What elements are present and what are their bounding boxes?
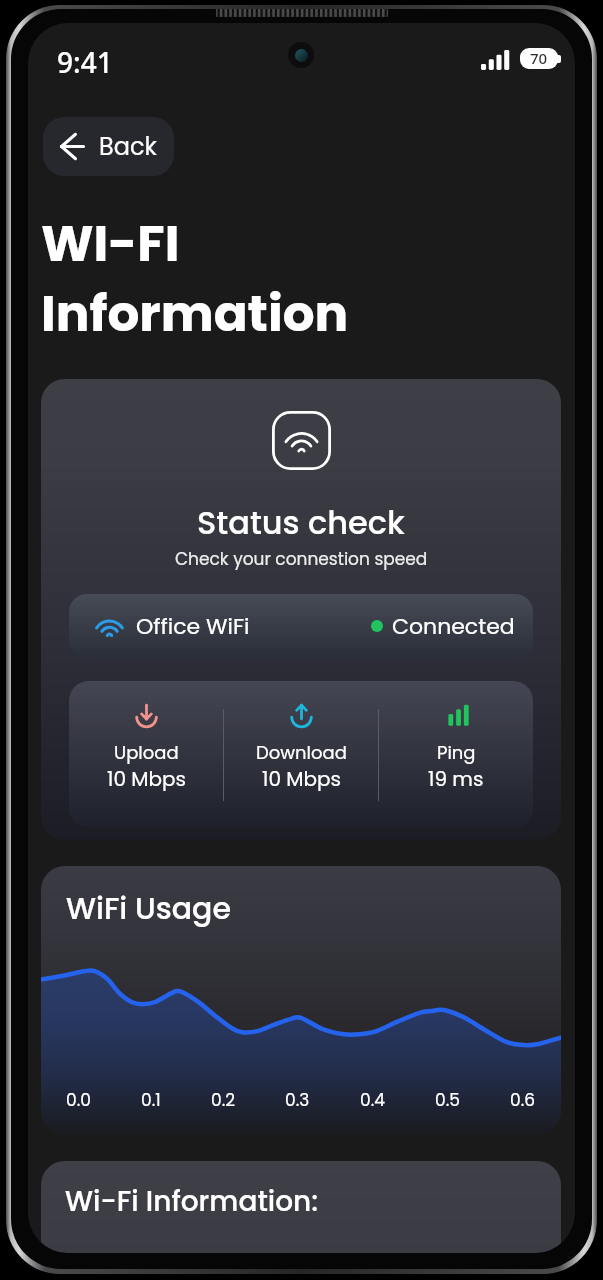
staticText: Check your connestion speed xyxy=(175,547,428,571)
staticText: WiFi Usage xyxy=(66,888,231,930)
staticText: 0.2 xyxy=(211,1088,236,1112)
staticText: Upload xyxy=(114,740,179,765)
staticText: 9:41 xyxy=(57,43,113,81)
staticText: 19 ms xyxy=(428,765,484,793)
staticText: 0.0 xyxy=(66,1088,91,1112)
staticText: 10 Mbps xyxy=(107,765,186,793)
staticText: WI-FI Information xyxy=(41,209,349,348)
staticText: Connected xyxy=(392,611,515,642)
button[interactable]: Office WiFi xyxy=(69,594,533,658)
staticText: Wi-Fi Information: xyxy=(65,1182,319,1221)
staticText: Ping xyxy=(437,740,476,765)
staticText: 70 xyxy=(530,48,548,68)
staticText: Download xyxy=(256,740,347,765)
button[interactable]: Back xyxy=(43,117,174,176)
staticText: 0.4 xyxy=(360,1088,385,1112)
staticText: Back xyxy=(99,130,157,164)
staticText: 0.6 xyxy=(510,1088,536,1112)
staticText: 0.1 xyxy=(141,1088,161,1112)
staticText: Office WiFi xyxy=(136,611,250,642)
staticText: 10 Mbps xyxy=(262,765,341,793)
staticText: Status check xyxy=(197,500,405,545)
staticText: 0.5 xyxy=(435,1088,460,1112)
staticText: 0.3 xyxy=(285,1088,310,1112)
